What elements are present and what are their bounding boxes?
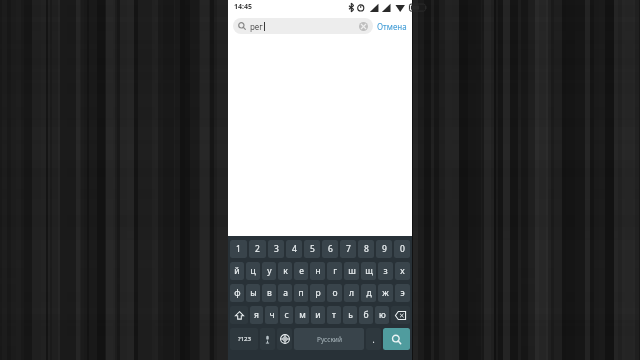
button[interactable]: м: [295, 306, 309, 324]
button[interactable]: 7: [340, 240, 356, 258]
staticText: о: [332, 287, 338, 299]
staticText: л: [349, 287, 354, 299]
button[interactable]: щ: [361, 262, 376, 280]
button[interactable]: р: [310, 284, 325, 302]
button[interactable]: т: [327, 306, 341, 324]
staticText: 1: [236, 243, 241, 255]
button[interactable]: .: [366, 328, 381, 350]
button[interactable]: ж: [378, 284, 393, 302]
button[interactable]: э: [395, 284, 410, 302]
button[interactable]: Отмена: [377, 21, 407, 32]
button[interactable]: ?123: [230, 328, 258, 350]
staticText: х: [400, 265, 405, 277]
staticText: с: [284, 309, 289, 321]
staticText: й: [234, 265, 240, 277]
staticText: 2: [255, 243, 260, 255]
staticText: 3: [274, 243, 279, 255]
staticText: м: [299, 309, 306, 321]
staticText: ч: [269, 309, 275, 321]
staticText: а: [283, 287, 288, 299]
button[interactable]: 0: [394, 240, 410, 258]
button[interactable]: й: [230, 262, 244, 280]
button[interactable]: д: [361, 284, 376, 302]
button[interactable]: 6: [322, 240, 338, 258]
staticText: 6: [328, 243, 333, 255]
button[interactable]: в: [262, 284, 276, 302]
button[interactable]: ь: [343, 306, 357, 324]
button[interactable]: ц: [246, 262, 260, 280]
staticText: п: [298, 287, 304, 299]
button[interactable]: Shift: [230, 306, 248, 324]
button[interactable]: с: [280, 306, 293, 324]
button[interactable]: 2: [249, 240, 266, 258]
staticText: Русский: [317, 335, 342, 344]
button[interactable]: л: [344, 284, 359, 302]
staticText: .: [372, 334, 375, 345]
staticText: 9: [382, 243, 387, 255]
staticText: б: [363, 309, 369, 321]
staticText: я: [254, 309, 259, 321]
button[interactable]: Voice input: [260, 328, 275, 350]
button[interactable]: 5: [304, 240, 320, 258]
staticText: г: [333, 265, 337, 277]
button[interactable]: е: [294, 262, 308, 280]
button[interactable]: з: [378, 262, 393, 280]
button[interactable]: х: [395, 262, 410, 280]
staticText: у: [267, 265, 272, 277]
button[interactable]: 8: [358, 240, 374, 258]
staticText: е: [299, 265, 304, 277]
button[interactable]: г: [327, 262, 342, 280]
button[interactable]: б: [359, 306, 373, 324]
button[interactable]: ш: [344, 262, 359, 280]
button[interactable]: о: [327, 284, 342, 302]
staticText: в: [267, 287, 272, 299]
staticText: 5: [310, 243, 315, 255]
staticText: рег: [250, 21, 263, 32]
button[interactable]: Clear: [359, 22, 368, 31]
button[interactable]: 3: [268, 240, 284, 258]
staticText: щ: [365, 265, 373, 277]
staticText: ж: [382, 287, 389, 299]
staticText: ?123: [238, 335, 251, 343]
staticText: д: [366, 287, 372, 299]
staticText: ь: [348, 309, 353, 321]
button[interactable]: я: [250, 306, 263, 324]
button[interactable]: ф: [230, 284, 244, 302]
staticText: 4: [292, 243, 297, 255]
staticText: и: [315, 309, 321, 321]
button[interactable]: ч: [265, 306, 278, 324]
staticText: Отмена: [377, 21, 407, 32]
button[interactable]: ю: [375, 306, 389, 324]
staticText: 0: [400, 243, 405, 255]
button[interactable]: ы: [246, 284, 260, 302]
staticText: ю: [379, 309, 386, 321]
button[interactable]: 1: [230, 240, 247, 258]
button[interactable]: Backspace: [391, 306, 410, 324]
staticText: э: [400, 287, 405, 299]
staticText: ш: [348, 265, 356, 277]
staticText: н: [315, 265, 321, 277]
staticText: ы: [250, 287, 257, 299]
staticText: 7: [346, 243, 351, 255]
button[interactable]: 9: [376, 240, 392, 258]
button[interactable]: 4: [286, 240, 302, 258]
button[interactable]: рег: [233, 18, 373, 34]
button[interactable]: к: [278, 262, 292, 280]
staticText: р: [315, 287, 321, 299]
button[interactable]: Русский: [294, 328, 364, 350]
button[interactable]: н: [310, 262, 325, 280]
button[interactable]: Search: [383, 328, 410, 350]
staticText: ц: [250, 265, 256, 277]
button[interactable]: и: [311, 306, 325, 324]
staticText: 14:45: [234, 2, 252, 12]
staticText: з: [383, 265, 388, 277]
button[interactable]: Change language: [277, 328, 292, 350]
button[interactable]: у: [262, 262, 276, 280]
button[interactable]: п: [294, 284, 308, 302]
button[interactable]: а: [278, 284, 292, 302]
staticText: ф: [234, 287, 241, 299]
staticText: к: [283, 265, 288, 277]
staticText: т: [332, 309, 336, 321]
staticText: 8: [364, 243, 369, 255]
